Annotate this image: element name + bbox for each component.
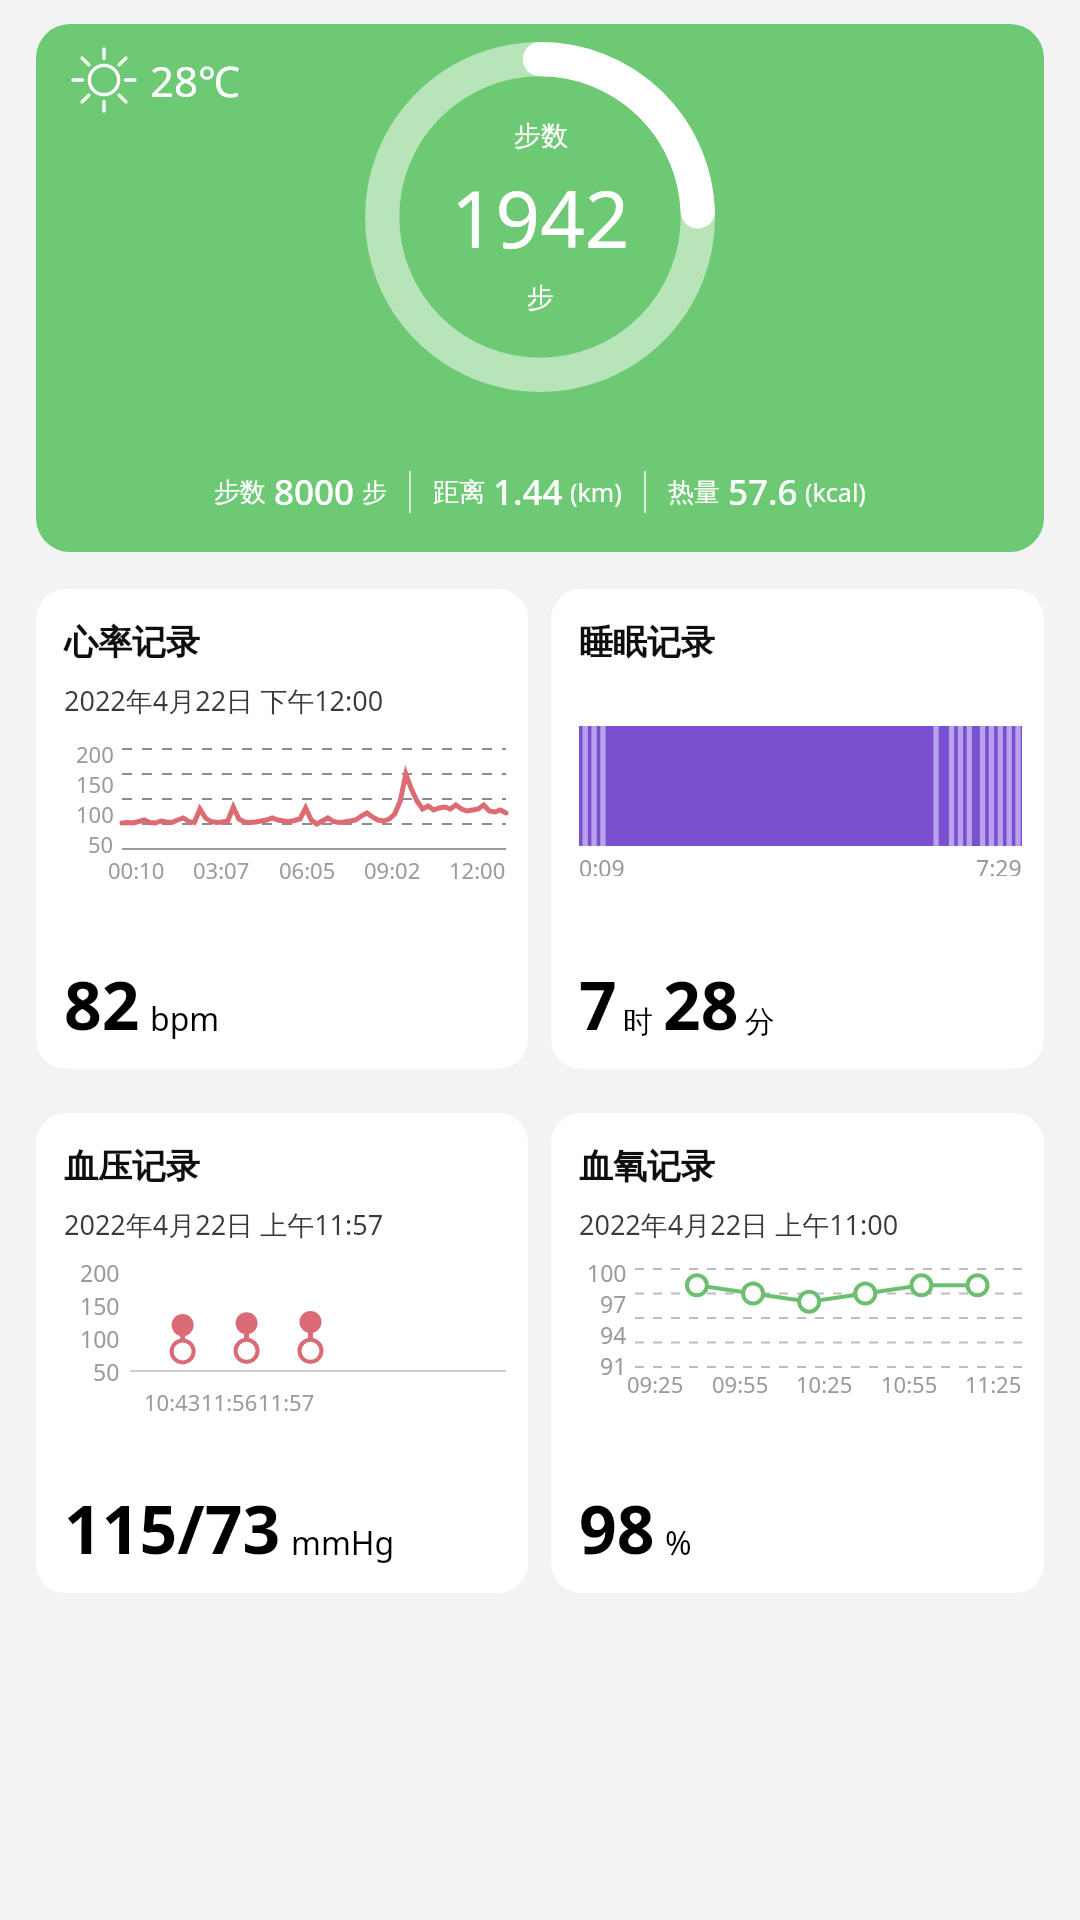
staticText: 时 [623,1003,653,1041]
staticText: 82 [64,959,140,1049]
staticText: 28℃ [150,52,240,109]
staticText: bpm [150,997,220,1041]
staticText: 150 [76,769,114,799]
staticText: 09:25 [627,1369,684,1399]
staticText: 0:09 [579,852,625,876]
staticText: 09:02 [364,855,421,885]
staticText: 10:55 [881,1369,938,1399]
staticText: 步数 [214,476,266,509]
staticText: 7:29 [976,852,1022,876]
staticText: 94 [600,1319,627,1350]
staticText: (kcal) [805,475,866,509]
staticText: 8000 [274,468,355,516]
staticText: 98 [579,1483,655,1573]
other: Weather sunny [70,46,138,114]
button[interactable]: 睡眠记录 [551,589,1044,1069]
staticText: 7 [579,959,617,1049]
staticText: 03:07 [193,855,250,885]
staticText: 57.6 [728,468,798,516]
button[interactable]: 血氧记录 [551,1113,1044,1593]
staticText: 步数 [514,119,568,153]
staticText: 06:05 [279,855,336,885]
staticText: 115/73 [64,1483,281,1573]
staticText: 1.44 [493,468,563,516]
staticText: 100 [587,1257,627,1288]
staticText: (km) [570,475,622,509]
staticText: 10:43 [144,1387,201,1417]
staticText: 97 [600,1288,627,1319]
staticText: 09:55 [712,1369,769,1399]
staticText: 心率记录 [64,621,200,664]
staticText: 热量 [668,476,720,509]
button[interactable]: Weather sunny [36,24,1044,552]
staticText: 1942 [451,165,630,271]
staticText: 91 [600,1350,627,1381]
staticText: 50 [93,1356,120,1387]
staticText: mmHg [291,1521,395,1565]
staticText: 200 [80,1257,120,1288]
staticText: 2022年4月22日 上午11:57 [64,1206,384,1243]
staticText: 200 [76,739,114,769]
staticText: 步 [527,281,554,315]
staticText: 100 [76,799,114,829]
staticText: 距离 [433,476,485,509]
staticText: 11:56 [201,1387,258,1417]
staticText: 50 [88,829,114,859]
staticText: 150 [80,1290,120,1321]
staticText: 睡眠记录 [579,621,715,664]
staticText: 11:57 [258,1387,315,1417]
staticText: 步 [362,477,387,508]
staticText: 分 [745,1003,775,1041]
staticText: 11:25 [965,1369,1022,1399]
button[interactable]: 心率记录 [36,589,528,1069]
staticText: 2022年4月22日 下午12:00 [64,682,384,719]
staticText: 28 [663,959,739,1049]
staticText: 00:10 [108,855,165,885]
staticText: 12:00 [449,855,506,885]
staticText: 100 [80,1323,120,1354]
staticText: % [665,1521,692,1565]
button[interactable]: 血压记录 [36,1113,528,1593]
staticText: 血压记录 [64,1145,200,1188]
staticText: 10:25 [796,1369,853,1399]
staticText: 血氧记录 [579,1145,715,1188]
staticText: 2022年4月22日 上午11:00 [579,1206,899,1243]
